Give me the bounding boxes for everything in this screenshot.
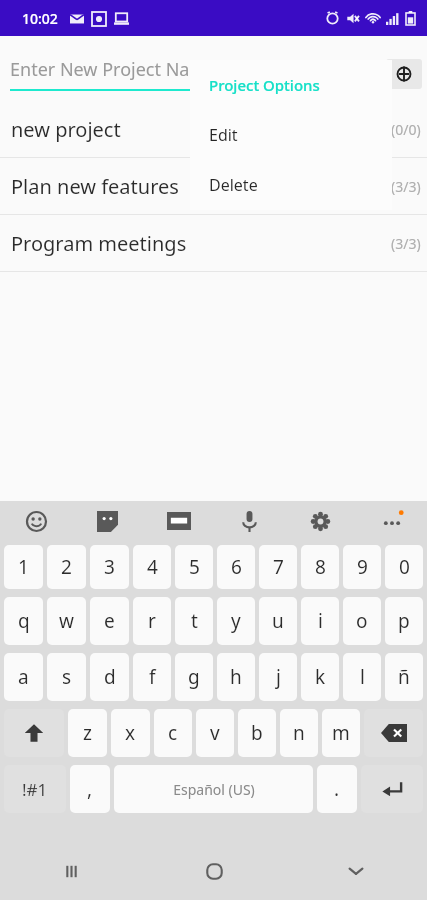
button[interactable]: Add project <box>386 59 422 89</box>
staticText: 3 <box>104 554 115 580</box>
button[interactable]: 3 <box>90 545 129 589</box>
staticText: w <box>59 608 74 634</box>
staticText: new project <box>11 116 121 143</box>
staticText: 5 <box>189 554 200 580</box>
button[interactable]: p <box>385 597 423 645</box>
button[interactable]: Emoji <box>0 501 72 541</box>
staticText: 7 <box>273 554 284 580</box>
button[interactable]: 8 <box>301 545 339 589</box>
button[interactable]: Enter New Project Name <box>10 57 382 91</box>
button[interactable]: More options <box>356 501 427 541</box>
staticText: r <box>148 608 156 634</box>
staticText: v <box>210 720 220 746</box>
staticText: b <box>251 720 263 746</box>
button[interactable]: . <box>317 765 357 813</box>
button[interactable]: d <box>90 653 129 701</box>
button[interactable]: Plan new features <box>0 158 427 214</box>
staticText: y <box>231 608 241 634</box>
button[interactable]: 4 <box>133 545 171 589</box>
staticText: f <box>149 664 156 690</box>
button[interactable]: Keyboard settings <box>285 501 356 541</box>
button[interactable]: z <box>68 709 107 757</box>
staticText: c <box>168 720 178 746</box>
button[interactable]: 0 <box>385 545 423 589</box>
staticText: l <box>360 664 365 690</box>
staticText: (3/3) <box>391 234 421 253</box>
button[interactable]: Hide keyboard <box>285 842 427 900</box>
staticText: (3/3) <box>391 177 421 196</box>
staticText: Project Options <box>209 75 320 95</box>
button[interactable]: Recents <box>0 842 143 900</box>
button[interactable]: , <box>70 765 110 813</box>
button[interactable]: q <box>4 597 43 645</box>
staticText: Edit <box>209 124 238 146</box>
button[interactable]: x <box>111 709 150 757</box>
button[interactable]: 5 <box>175 545 213 589</box>
staticText: 10:02 <box>22 9 58 28</box>
staticText: , <box>87 776 93 802</box>
staticText: o <box>356 608 368 634</box>
button[interactable]: t <box>175 597 213 645</box>
button[interactable]: n <box>280 709 318 757</box>
button[interactable]: e <box>90 597 129 645</box>
staticText: m <box>332 720 350 746</box>
button[interactable]: k <box>301 653 339 701</box>
button[interactable]: Shift <box>4 709 64 757</box>
staticText: (0/0) <box>391 120 421 139</box>
button[interactable]: s <box>47 653 86 701</box>
button[interactable]: Project Options <box>190 60 392 110</box>
staticText: a <box>18 664 29 690</box>
button[interactable]: Home <box>143 842 285 900</box>
button[interactable]: 9 <box>343 545 381 589</box>
staticText: g <box>188 664 200 690</box>
staticText: 4 <box>147 554 158 580</box>
button[interactable]: Delete <box>190 160 392 210</box>
button[interactable]: Backspace <box>364 709 423 757</box>
button[interactable]: w <box>47 597 86 645</box>
button[interactable]: g <box>175 653 213 701</box>
staticText: t <box>191 608 198 634</box>
button[interactable]: a <box>4 653 43 701</box>
button[interactable]: 6 <box>217 545 255 589</box>
staticText: 6 <box>231 554 242 580</box>
staticText: j <box>276 664 281 690</box>
staticText: p <box>398 608 410 634</box>
button[interactable]: Voice input <box>214 501 285 541</box>
button[interactable]: o <box>343 597 381 645</box>
button[interactable]: GIF <box>143 501 214 541</box>
button[interactable]: i <box>301 597 339 645</box>
button[interactable]: c <box>154 709 192 757</box>
button[interactable]: b <box>238 709 276 757</box>
button[interactable]: 2 <box>47 545 86 589</box>
staticText: q <box>18 608 30 634</box>
staticText: e <box>104 608 115 634</box>
button[interactable]: new project <box>0 101 427 157</box>
button[interactable]: l <box>343 653 381 701</box>
staticText: Delete <box>209 174 258 196</box>
button[interactable]: h <box>217 653 255 701</box>
staticText: 0 <box>399 554 410 580</box>
button[interactable]: !#1 <box>4 765 66 813</box>
staticText: i <box>318 608 323 634</box>
button[interactable]: f <box>133 653 171 701</box>
button[interactable]: Edit <box>190 110 392 160</box>
staticText: x <box>125 720 136 746</box>
staticText: ñ <box>398 664 410 690</box>
button[interactable]: y <box>217 597 255 645</box>
button[interactable]: 7 <box>259 545 297 589</box>
button[interactable]: r <box>133 597 171 645</box>
staticText: 9 <box>357 554 368 580</box>
button[interactable]: Stickers <box>72 501 143 541</box>
button[interactable]: j <box>259 653 297 701</box>
staticText: Plan new features <box>11 173 179 200</box>
button[interactable]: u <box>259 597 297 645</box>
button[interactable]: Program meetings <box>0 215 427 271</box>
button[interactable]: 1 <box>4 545 43 589</box>
button[interactable]: m <box>322 709 360 757</box>
button[interactable]: v <box>196 709 234 757</box>
button[interactable]: Español (US) <box>114 765 313 813</box>
button[interactable]: Enter <box>361 765 423 813</box>
button[interactable]: ñ <box>385 653 423 701</box>
staticText: Program meetings <box>11 230 187 257</box>
staticText: !#1 <box>22 778 48 801</box>
